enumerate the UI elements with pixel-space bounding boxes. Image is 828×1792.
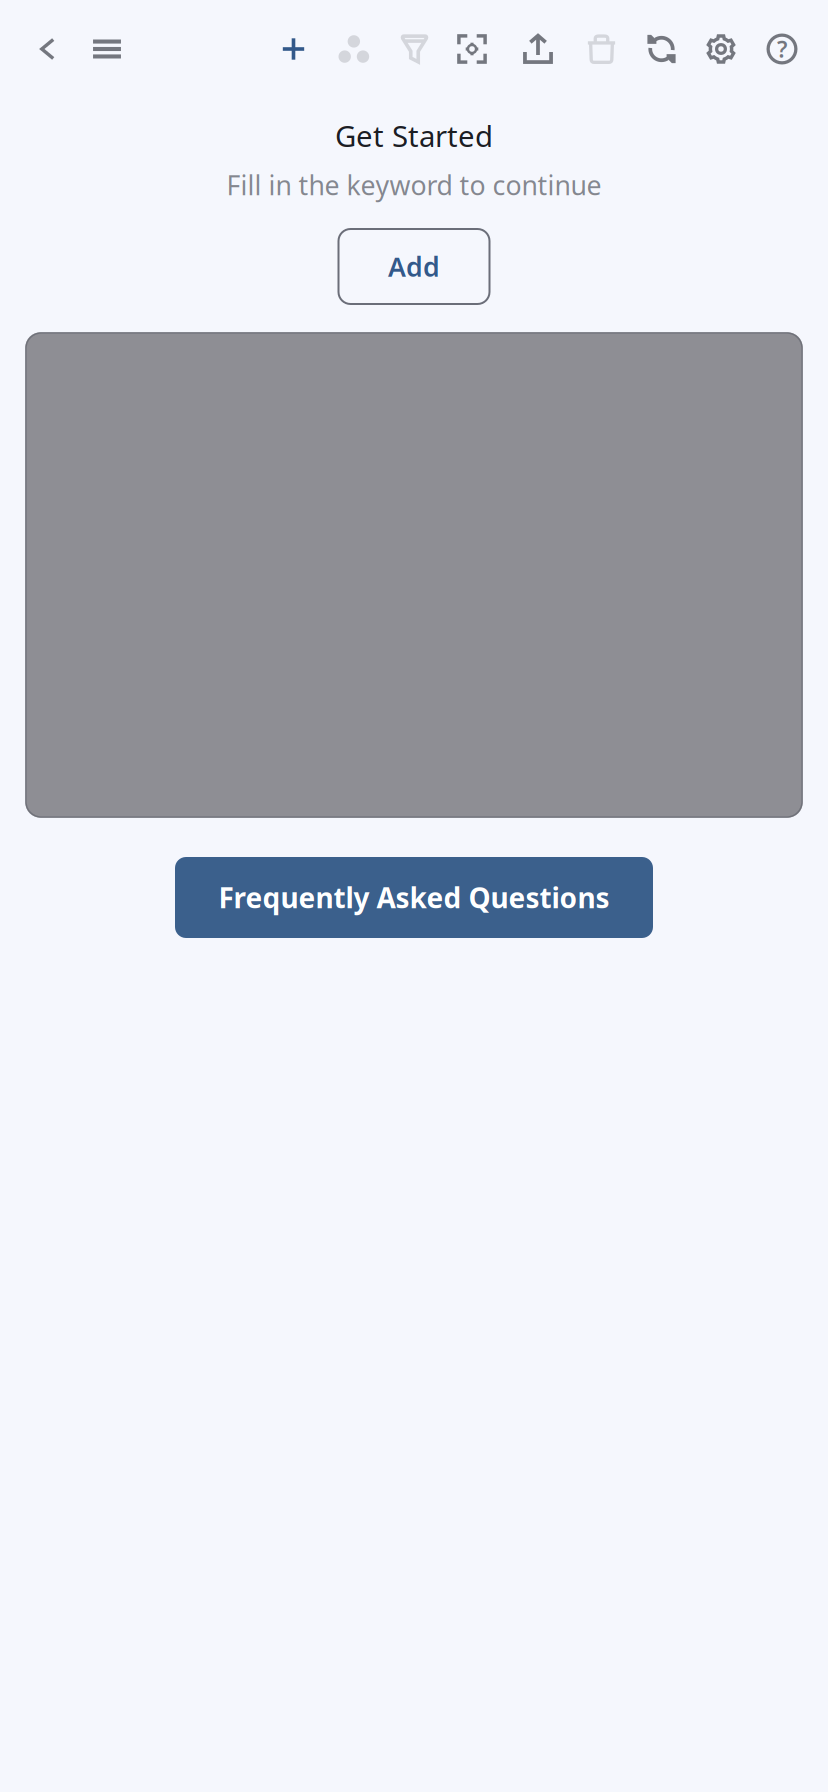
button[interactable]: Refresh — [631, 0, 692, 98]
button[interactable]: Settings — [692, 0, 750, 98]
button[interactable]: Back — [18, 0, 77, 98]
button[interactable]: Group — [319, 0, 389, 98]
button[interactable]: Add — [268, 0, 319, 98]
staticText: Frequently Asked Questions — [218, 879, 609, 916]
staticText: ? — [777, 34, 787, 64]
button[interactable]: Help — [750, 0, 814, 98]
staticText: Get Started — [335, 116, 493, 155]
button[interactable]: Delete — [572, 0, 631, 98]
staticText: Add — [388, 249, 440, 284]
button[interactable]: Menu — [77, 0, 137, 98]
button[interactable]: Frequently Asked Questions — [175, 857, 653, 938]
button[interactable]: Filter — [389, 0, 440, 98]
button[interactable]: Share — [504, 0, 572, 98]
staticText: Fill in the keyword to continue — [226, 167, 601, 203]
button[interactable]: Scan — [440, 0, 504, 98]
button[interactable]: Add — [338, 229, 489, 304]
